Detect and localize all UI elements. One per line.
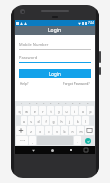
button[interactable]: Back (30, 147, 36, 153)
staticText: Login (48, 27, 62, 34)
button[interactable]: o (79, 106, 86, 115)
button[interactable]: q (16, 106, 22, 115)
staticText: Password (19, 55, 38, 60)
button[interactable]: v (53, 126, 60, 135)
staticText: Mobile Number (19, 42, 49, 47)
staticText: x (39, 129, 41, 133)
staticText: r (42, 109, 44, 113)
button[interactable]: Password (19, 55, 91, 63)
staticText: e (34, 109, 36, 113)
button[interactable]: Forgot Password? (62, 81, 91, 87)
staticText: p (89, 109, 92, 113)
staticText: z (30, 129, 32, 133)
staticText: i (74, 109, 75, 113)
staticText: u (65, 109, 68, 113)
button[interactable]: l (82, 116, 89, 125)
staticText: t (50, 109, 52, 113)
staticText: w (25, 109, 28, 113)
button[interactable]: c (45, 126, 52, 135)
staticText: Forgot Password? (63, 82, 90, 86)
staticText: 4 (43, 102, 45, 105)
staticText: b (63, 129, 66, 133)
staticText: 7 (65, 102, 67, 105)
button[interactable]: r (39, 106, 46, 115)
staticText: Help? (20, 82, 29, 86)
button[interactable]: j (66, 116, 73, 125)
staticText: . (77, 139, 78, 143)
button[interactable]: Shift (16, 126, 26, 135)
staticText: 7:24 (88, 21, 94, 25)
staticText: j (69, 119, 70, 123)
staticText: y (58, 109, 60, 113)
button[interactable]: f (42, 116, 49, 125)
button[interactable]: p (87, 106, 94, 115)
staticText: 8 (72, 102, 74, 105)
button[interactable]: Backspace (85, 126, 94, 135)
button[interactable]: Home (49, 147, 55, 153)
button[interactable]: z (27, 126, 35, 135)
staticText: 3 (36, 102, 38, 105)
button[interactable]: i (71, 106, 78, 115)
button[interactable]: y (55, 106, 62, 115)
staticText: g (52, 119, 55, 123)
button[interactable]: Recents (68, 147, 74, 153)
staticText: h (60, 119, 63, 123)
staticText: 1 (21, 102, 23, 105)
button[interactable]: , (29, 136, 36, 145)
staticText: l (85, 119, 86, 123)
staticText: m (79, 129, 83, 133)
staticText: 5 (50, 102, 52, 105)
button[interactable]: Mobile Number (19, 42, 91, 50)
button[interactable]: x (36, 126, 44, 135)
staticText: o (82, 109, 84, 113)
button[interactable]: s (28, 116, 34, 125)
staticText: a (23, 119, 25, 123)
staticText: c (48, 129, 50, 133)
staticText: n (71, 129, 74, 133)
button[interactable]: k (74, 116, 81, 125)
button[interactable]: w (23, 106, 30, 115)
staticText: s (30, 119, 32, 123)
button[interactable]: h (58, 116, 65, 125)
button[interactable]: a (21, 116, 27, 125)
staticText: f (45, 119, 47, 123)
button[interactable]: u (63, 106, 70, 115)
button[interactable]: ?123 (16, 136, 28, 145)
button[interactable]: Login (19, 69, 91, 78)
staticText: 0 (87, 102, 89, 105)
staticText: 9 (79, 102, 81, 105)
button[interactable]: n (69, 126, 76, 135)
button[interactable]: Help? (19, 81, 30, 87)
button[interactable]: e (31, 106, 38, 115)
button[interactable]: Enter (82, 136, 94, 145)
button[interactable]: d (35, 116, 41, 125)
staticText: q (18, 109, 21, 113)
button[interactable]: g (50, 116, 57, 125)
staticText: d (37, 119, 40, 123)
staticText: ?123 (20, 139, 25, 142)
staticText: 2 (29, 102, 31, 105)
button[interactable]: b (61, 126, 68, 135)
staticText: Login (49, 71, 61, 77)
staticText: 6 (58, 102, 60, 105)
button[interactable]: t (47, 106, 54, 115)
staticText: v (56, 129, 58, 133)
staticText: k (77, 119, 79, 123)
button[interactable]: Keyboard (83, 147, 89, 153)
button[interactable]: m (77, 126, 84, 135)
